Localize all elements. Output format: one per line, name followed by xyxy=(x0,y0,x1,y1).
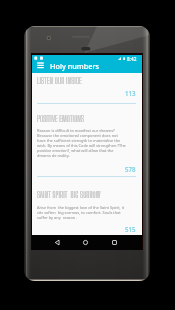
button[interactable]: Open navigation menu xyxy=(36,61,45,70)
staticText: 515 xyxy=(125,225,136,233)
button[interactable]: Recent apps xyxy=(111,239,118,246)
staticText: Reason is difficult to manifest our drea… xyxy=(37,128,127,158)
button[interactable]: SAINT SPIRIT BIG SORROW xyxy=(37,191,101,200)
staticText: SAINT SPIRIT BIG SORROW xyxy=(37,191,101,200)
staticText: 578 xyxy=(125,165,136,173)
staticText: LISTEN OUR INSIDE xyxy=(37,77,82,86)
staticText: 113 xyxy=(125,89,136,97)
button[interactable]: Home xyxy=(82,239,89,246)
button[interactable]: Back xyxy=(54,239,61,246)
button[interactable]: POSITIVE EMOTIONS xyxy=(37,115,85,124)
staticText: Arise from the biggest love of the Saint… xyxy=(37,205,127,220)
staticText: POSITIVE EMOTIONS xyxy=(37,115,85,124)
staticText: Holy numbers xyxy=(50,61,100,71)
button[interactable]: LISTEN OUR INSIDE xyxy=(37,77,82,86)
button[interactable]: Holy numbers xyxy=(50,61,100,71)
staticText: 8:42 xyxy=(127,56,137,61)
